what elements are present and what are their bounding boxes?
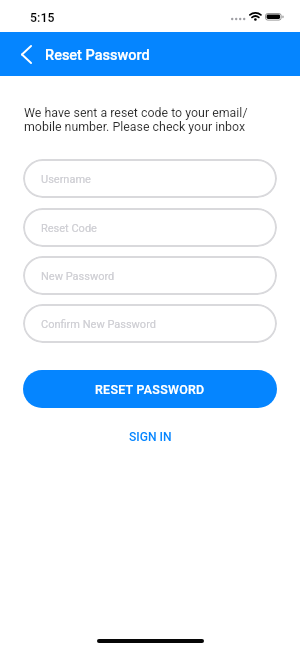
button[interactable]: SIGN IN [121, 427, 179, 447]
button[interactable]: Confirm New Password [23, 304, 277, 343]
staticText: New Password [41, 270, 115, 283]
staticText: Username [41, 173, 91, 186]
button[interactable]: RESET PASSWORD [23, 370, 277, 408]
button[interactable]: Reset Code [23, 208, 277, 247]
button[interactable]: Back [12, 37, 40, 71]
staticText: Reset Code [41, 222, 97, 235]
staticText: RESET PASSWORD [95, 382, 205, 397]
button[interactable]: New Password [23, 256, 277, 295]
button[interactable]: Username [23, 159, 277, 198]
staticText: 5:15 [30, 11, 55, 25]
staticText: Confirm New Password [41, 318, 156, 331]
staticText: Reset Password [45, 47, 150, 64]
staticText: We have sent a reset code to your email/… [24, 105, 248, 135]
staticText: SIGN IN [129, 430, 172, 444]
